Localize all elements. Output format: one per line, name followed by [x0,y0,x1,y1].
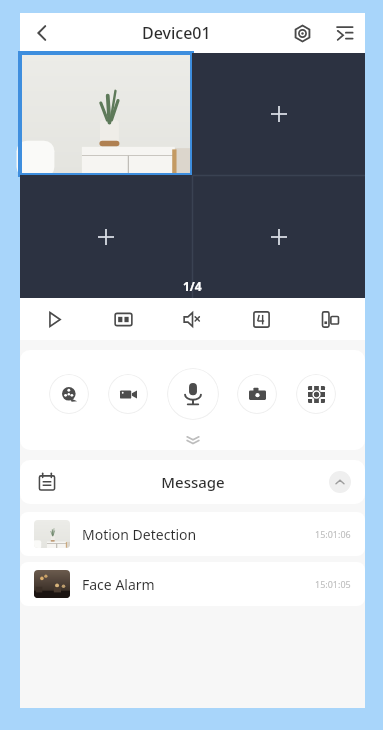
button[interactable]: Back [20,13,64,53]
button[interactable] [20,53,192,175]
other: Calendar [36,471,58,493]
staticText: 1/4 [183,278,202,294]
button[interactable]: Add camera [20,175,192,298]
button[interactable]: Menu [323,13,365,53]
button[interactable]: Collapse [329,471,351,493]
button[interactable]: Snapshot [237,374,277,414]
button[interactable]: PTZ control [296,374,336,414]
button[interactable]: Add camera [192,53,365,175]
staticText: Device01 [142,22,211,44]
button[interactable]: Settings [281,13,323,53]
button[interactable]: Add camera [192,175,365,298]
button[interactable]: Mute [158,298,227,340]
button[interactable]: Talk [167,368,219,420]
button[interactable]: Full screen [296,298,365,340]
button[interactable]: Face Alarm [20,562,365,606]
staticText: 15:01:05 [315,578,351,590]
button[interactable]: Stream quality SD [89,298,158,340]
staticText: Message [161,472,225,492]
staticText: Motion Detection [82,525,315,544]
button[interactable]: Play [20,298,89,340]
button[interactable]: Four split view [227,298,296,340]
staticText: Face Alarm [82,575,315,594]
button[interactable]: Calendar [20,460,365,504]
button[interactable]: Motion Detection [20,512,365,556]
button[interactable]: Playback [49,374,89,414]
staticText: 15:01:06 [315,528,351,540]
button[interactable]: Expand [171,430,215,450]
button[interactable]: Record video [108,374,148,414]
